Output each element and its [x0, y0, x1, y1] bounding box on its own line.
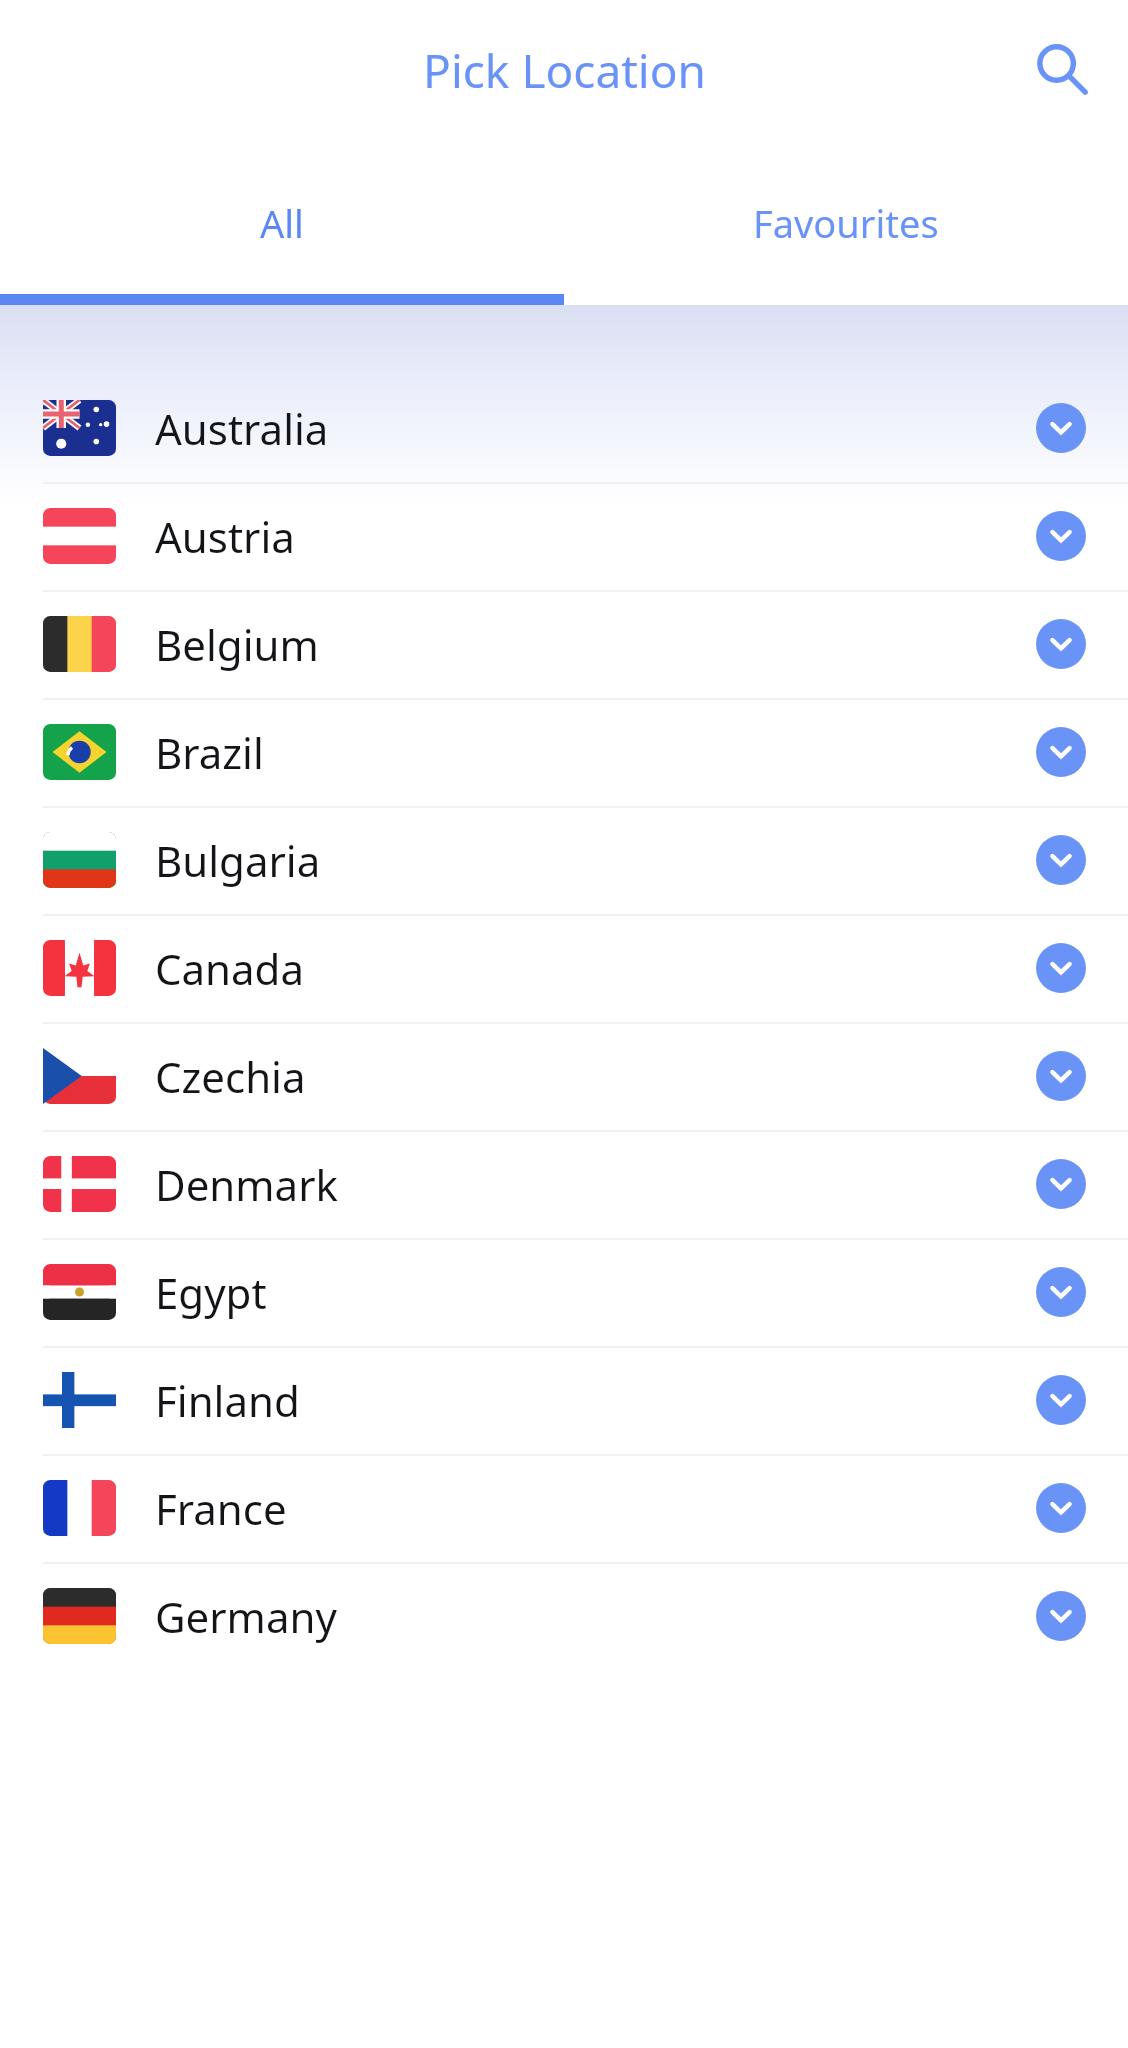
- button[interactable]: Canada: [0, 914, 1128, 1022]
- button[interactable]: Belgium: [0, 590, 1128, 698]
- button[interactable]: Expand Brazil: [1036, 727, 1086, 777]
- staticText: Belgium: [155, 616, 319, 673]
- button[interactable]: Expand Czechia: [1036, 1051, 1086, 1101]
- staticText: Czechia: [155, 1048, 306, 1105]
- button[interactable]: Austria: [0, 482, 1128, 590]
- button[interactable]: Expand Finland: [1036, 1375, 1086, 1425]
- button[interactable]: France: [0, 1454, 1128, 1562]
- button[interactable]: Australia: [0, 374, 1128, 482]
- staticText: Favourites: [753, 197, 939, 249]
- staticText: Egypt: [155, 1264, 267, 1321]
- button[interactable]: Brazil: [0, 698, 1128, 806]
- button[interactable]: Expand Canada: [1036, 943, 1086, 993]
- button[interactable]: Expand France: [1036, 1483, 1086, 1533]
- button[interactable]: Bulgaria: [0, 806, 1128, 914]
- staticText: Australia: [155, 400, 329, 457]
- button[interactable]: Expand Germany: [1036, 1591, 1086, 1641]
- staticText: France: [155, 1480, 287, 1537]
- button[interactable]: Search: [1016, 24, 1108, 116]
- button[interactable]: Denmark: [0, 1130, 1128, 1238]
- button[interactable]: Favourites: [564, 140, 1128, 305]
- button[interactable]: Finland: [0, 1346, 1128, 1454]
- button[interactable]: Expand Australia: [1036, 403, 1086, 453]
- staticText: All: [260, 197, 304, 249]
- staticText: Denmark: [155, 1156, 338, 1213]
- staticText: Brazil: [155, 724, 264, 781]
- staticText: Germany: [155, 1588, 337, 1645]
- button[interactable]: Expand Bulgaria: [1036, 835, 1086, 885]
- button[interactable]: Czechia: [0, 1022, 1128, 1130]
- staticText: Pick Location: [423, 39, 706, 102]
- staticText: Canada: [155, 940, 305, 997]
- button[interactable]: Germany: [0, 1562, 1128, 1670]
- button[interactable]: Expand Denmark: [1036, 1159, 1086, 1209]
- button[interactable]: All: [0, 140, 564, 305]
- staticText: Bulgaria: [155, 832, 321, 889]
- staticText: Finland: [155, 1372, 300, 1429]
- button[interactable]: Egypt: [0, 1238, 1128, 1346]
- button[interactable]: Expand Belgium: [1036, 619, 1086, 669]
- button[interactable]: Expand Egypt: [1036, 1267, 1086, 1317]
- button[interactable]: Expand Austria: [1036, 511, 1086, 561]
- staticText: Austria: [155, 508, 295, 565]
